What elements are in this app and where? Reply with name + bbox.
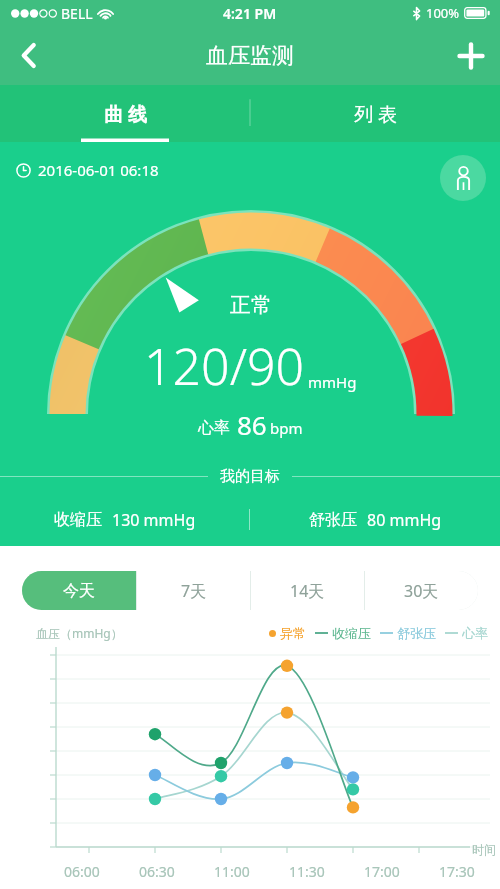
staticText: mmHg: [308, 372, 357, 392]
staticText: BELL: [61, 4, 93, 23]
staticText: 14天: [290, 580, 325, 602]
staticText: 血压（mmHg）: [36, 625, 123, 641]
staticText: 心率: [462, 625, 488, 641]
button[interactable]: 今天: [22, 571, 136, 610]
staticText: 我的目标: [220, 467, 280, 486]
staticText: bpm: [270, 418, 303, 438]
staticText: 收缩压: [332, 625, 371, 641]
staticText: 心率: [198, 418, 230, 438]
button[interactable]: 7天: [137, 571, 250, 610]
staticText: 11:30: [289, 862, 325, 881]
staticText: 收缩压: [54, 510, 102, 530]
staticText: 4:21 PM: [223, 4, 277, 23]
staticText: 100%: [426, 4, 460, 22]
staticText: 130 mmHg: [112, 509, 196, 530]
staticText: 06:30: [139, 862, 175, 881]
staticText: 120/90: [144, 332, 305, 400]
button[interactable]: 曲 线: [0, 85, 250, 142]
button[interactable]: 列 表: [250, 85, 500, 142]
button[interactable]: 30天: [365, 571, 478, 610]
staticText: 时间: [472, 842, 496, 857]
staticText: 舒张压: [309, 510, 357, 530]
button[interactable]: 14天: [251, 571, 364, 610]
staticText: 86: [237, 407, 267, 442]
staticText: 30天: [404, 580, 439, 602]
staticText: 正常: [230, 292, 272, 318]
button[interactable]: Back: [0, 26, 56, 85]
staticText: 06:00: [64, 862, 100, 881]
staticText: 17:00: [364, 862, 400, 881]
staticText: 80 mmHg: [367, 509, 442, 530]
staticText: 血压监测: [206, 42, 294, 70]
button[interactable]: Add record: [442, 26, 500, 85]
staticText: 11:00: [214, 862, 250, 881]
staticText: 曲 线: [104, 101, 147, 127]
staticText: 列 表: [354, 101, 397, 127]
staticText: 2016-06-01 06:18: [38, 160, 159, 180]
staticText: 舒张压: [397, 625, 436, 641]
staticText: 17:30: [439, 862, 475, 881]
staticText: 异常: [280, 625, 306, 641]
staticText: 今天: [63, 581, 95, 601]
staticText: 7天: [181, 580, 207, 602]
button[interactable]: User profile: [440, 155, 486, 201]
